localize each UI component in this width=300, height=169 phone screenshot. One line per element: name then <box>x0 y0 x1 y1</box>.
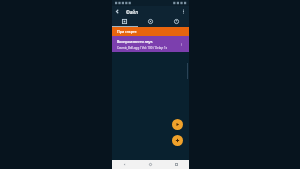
button[interactable]: Tab 2 <box>137 17 163 26</box>
button[interactable]: При старте <box>112 27 189 36</box>
button[interactable]: Home <box>137 160 163 169</box>
button[interactable]: Воспроизвести звук <box>112 36 189 52</box>
button[interactable]: More options <box>178 6 189 17</box>
staticText: При старте <box>117 29 137 34</box>
button[interactable]: Tab 1 <box>112 17 137 26</box>
staticText: Файл <box>126 9 178 15</box>
button[interactable]: Item menu <box>178 41 184 47</box>
button[interactable]: Recents <box>163 160 189 169</box>
button[interactable]: Back <box>112 160 137 169</box>
button[interactable]: Add <box>172 135 183 146</box>
button[interactable]: Play <box>172 119 183 130</box>
staticText: Cosmic_Bell.ogg / Vol: 100 / Delay: 1s <box>117 46 168 50</box>
button[interactable]: Back <box>112 6 123 17</box>
button[interactable]: Tab 3 <box>163 17 189 26</box>
staticText: Воспроизвести звук <box>117 39 153 44</box>
